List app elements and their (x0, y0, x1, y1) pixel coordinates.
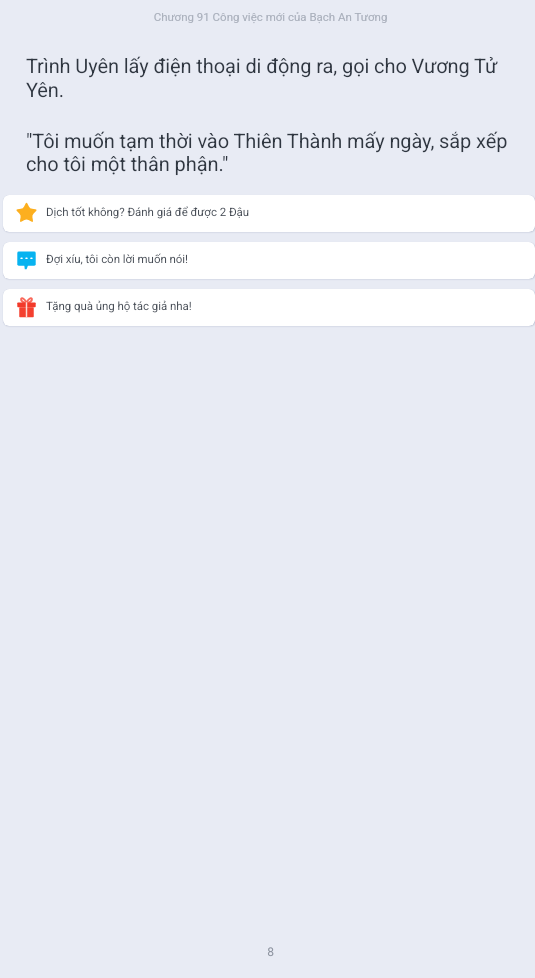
staticText: Tặng quà ủng hộ tác giả nha! (46, 299, 192, 312)
staticText: Yên. (26, 78, 64, 101)
button[interactable]: Send a gift (3, 289, 535, 326)
other: Send a gift (15, 296, 38, 319)
staticText: cho tôi một thân phận." (26, 152, 229, 175)
other: Leave a comment (15, 249, 38, 272)
staticText: Dịch tốt không? Đánh giá để được 2 Đậu (46, 205, 250, 218)
staticText: Trình Uyên lấy điện thoại di động ra, gọ… (26, 54, 498, 77)
button[interactable]: Leave a comment (3, 242, 535, 279)
staticText: 8 (3, 945, 535, 959)
button[interactable]: Rate translation (3, 195, 535, 232)
staticText: "Tôi muốn tạm thời vào Thiên Thành mấy n… (26, 129, 508, 152)
staticText: Đợi xíu, tôi còn lời muốn nói! (46, 252, 188, 265)
staticText: Chương 91 Công việc mới của Bạch An Tươn… (3, 10, 535, 23)
other: Rate translation (15, 202, 38, 225)
